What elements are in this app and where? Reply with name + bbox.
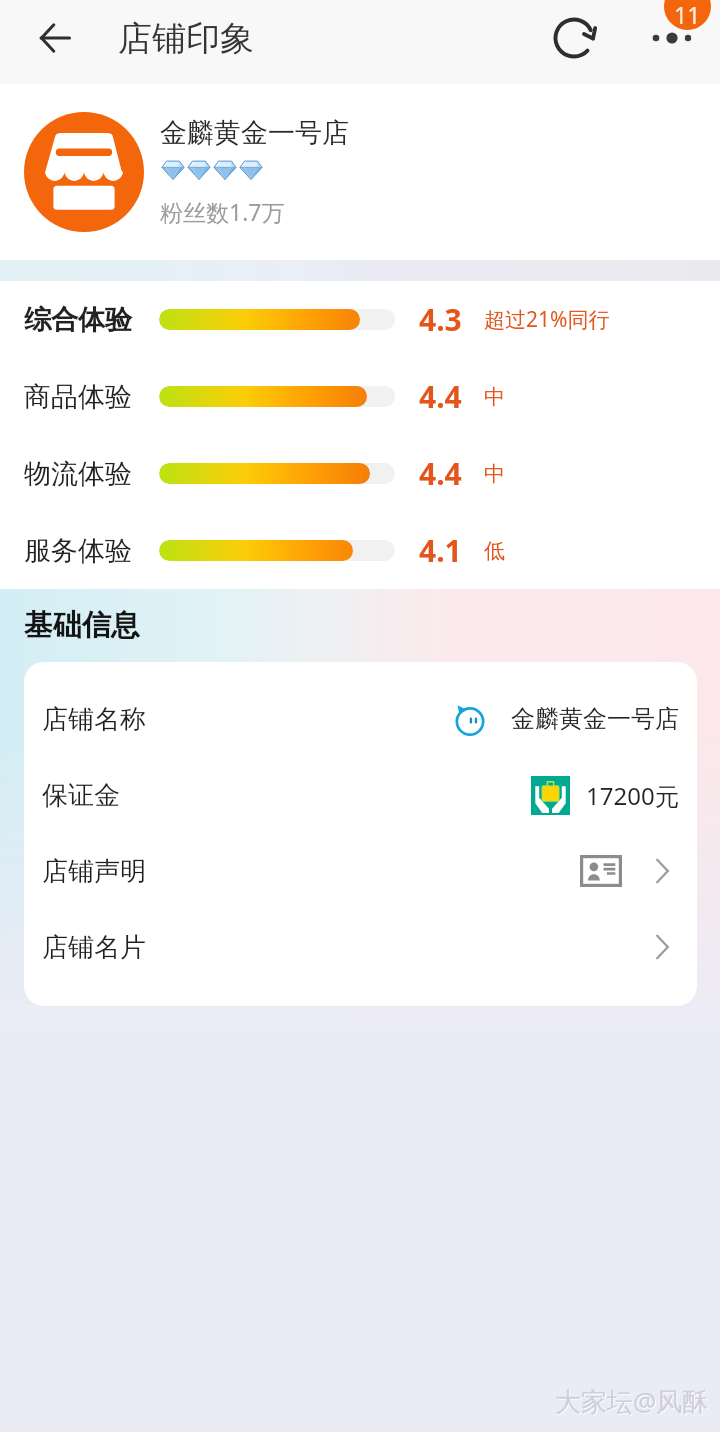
button[interactable]: 店铺名片 bbox=[24, 909, 697, 985]
button[interactable]: 商品体验 bbox=[0, 358, 720, 435]
button[interactable]: More options bbox=[636, 8, 708, 68]
staticText: 4.1 bbox=[419, 530, 462, 571]
staticText: 服务体验 bbox=[24, 534, 132, 568]
staticText: 低 bbox=[484, 538, 505, 564]
staticText: 商品体验 bbox=[24, 380, 132, 414]
staticText: 4.4 bbox=[419, 453, 462, 494]
staticText: 店铺名片 bbox=[42, 931, 146, 964]
staticText: 综合体验 bbox=[24, 303, 132, 337]
staticText: 大家坛@风酥 bbox=[555, 1383, 709, 1419]
button[interactable]: 店铺名称 bbox=[24, 681, 697, 757]
button[interactable]: 物流体验 bbox=[0, 435, 720, 512]
staticText: 店铺名称 bbox=[42, 703, 146, 736]
staticText: 4.3 bbox=[419, 299, 462, 340]
staticText: 店铺印象 bbox=[118, 17, 254, 60]
staticText: 金麟黄金一号店 bbox=[160, 116, 349, 150]
staticText: 保证金 bbox=[42, 779, 120, 812]
button[interactable]: 保证金 bbox=[24, 757, 697, 833]
staticText: 粉丝数1.7万 bbox=[160, 196, 285, 227]
button[interactable]: 服务体验 bbox=[0, 512, 720, 589]
button[interactable]: Refresh bbox=[546, 10, 602, 66]
button[interactable]: Shop avatar bbox=[24, 112, 144, 232]
staticText: 中 bbox=[484, 461, 505, 487]
button[interactable]: 店铺声明 bbox=[24, 833, 697, 909]
staticText: 物流体验 bbox=[24, 457, 132, 491]
staticText: 中 bbox=[484, 384, 505, 410]
button[interactable]: Back bbox=[27, 10, 83, 66]
staticText: 金麟黄金一号店 bbox=[511, 704, 679, 734]
staticText: 基础信息 bbox=[24, 607, 140, 644]
button[interactable]: 综合体验 bbox=[0, 281, 720, 358]
staticText: 大家坛@风酥 bbox=[556, 1384, 710, 1420]
staticText: 11 bbox=[674, 0, 701, 30]
staticText: 店铺声明 bbox=[42, 855, 146, 888]
staticText: 超过21%同行 bbox=[484, 305, 610, 334]
staticText: 17200元 bbox=[586, 779, 679, 812]
staticText: 4.4 bbox=[419, 376, 462, 417]
